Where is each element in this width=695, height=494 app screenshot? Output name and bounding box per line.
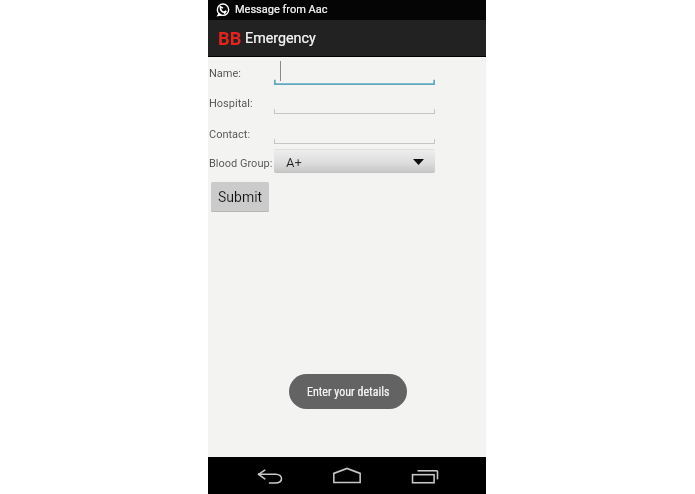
button[interactable]: Back (253, 457, 287, 494)
staticText: Blood Group: (209, 157, 273, 170)
staticText: BB (218, 28, 242, 49)
staticText: Enter your details (307, 385, 390, 399)
button[interactable]: Submit (211, 182, 269, 212)
button[interactable]: A+ (274, 149, 435, 173)
staticText: Hospital: (209, 97, 253, 110)
staticText: Contact: (209, 128, 251, 141)
staticText: Submit (218, 189, 263, 205)
button[interactable] (274, 120, 435, 144)
button[interactable]: Recent apps (408, 457, 442, 494)
staticText: Emergency (245, 30, 316, 47)
staticText: Message from Aac (235, 3, 328, 16)
button[interactable] (274, 90, 435, 114)
button[interactable]: Home (329, 457, 365, 494)
staticText: Name: (209, 67, 241, 80)
button[interactable] (274, 61, 435, 85)
staticText: A+ (286, 155, 302, 170)
